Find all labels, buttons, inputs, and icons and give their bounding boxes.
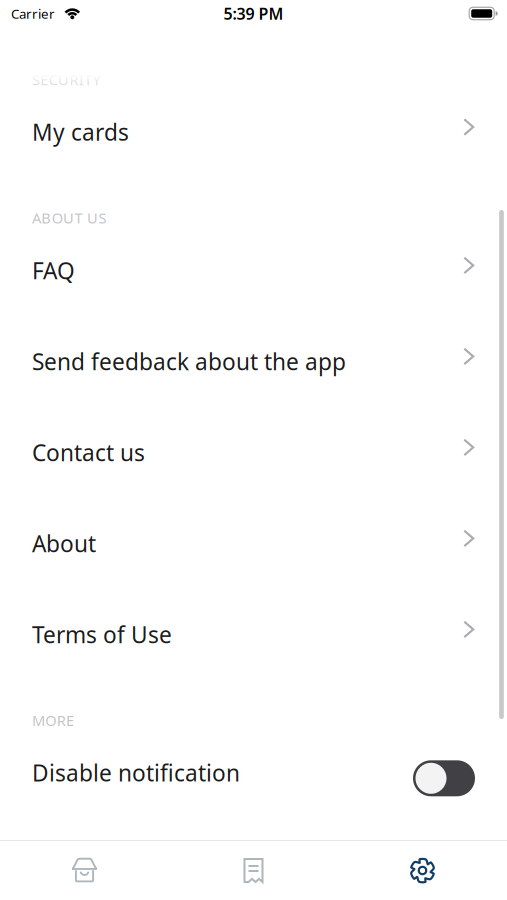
button[interactable]: Contact us [0,407,507,498]
button[interactable]: Send feedback about the app [0,316,507,407]
staticText: SECURITY [32,70,100,89]
staticText: My cards [32,117,129,147]
staticText: Send feedback about the app [32,346,346,376]
button[interactable]: FAQ [0,225,507,316]
staticText: About [32,528,96,558]
button[interactable]: Disable notification [0,727,507,818]
button[interactable]: Terms of Use [0,589,507,680]
staticText: ABOUT US [32,208,106,228]
staticText: Disable notification [32,758,240,788]
button[interactable]: Shop [0,841,169,900]
button[interactable]: My cards [0,86,507,177]
staticText: MORE [32,711,74,730]
button[interactable]: Orders [169,841,338,900]
staticText: 5:39 PM [223,3,283,24]
staticText: Terms of Use [32,619,172,649]
staticText: FAQ [32,255,75,285]
staticText: Contact us [32,437,145,467]
staticText: Carrier [11,5,55,22]
button[interactable]: About [0,498,507,589]
button[interactable]: Settings [338,841,507,900]
